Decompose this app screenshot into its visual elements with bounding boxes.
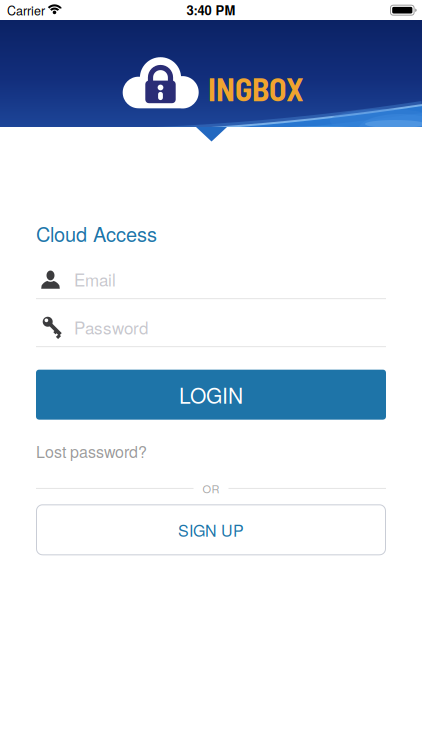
staticText: Password xyxy=(74,315,148,339)
button[interactable]: SIGN UP xyxy=(36,504,386,555)
button[interactable]: LOGIN xyxy=(36,370,386,420)
staticText: Lost password? xyxy=(36,440,147,462)
staticText: 3:40 PM xyxy=(186,1,235,19)
button[interactable]: Lost password? xyxy=(36,440,147,462)
button[interactable]: Email xyxy=(36,269,386,299)
staticText: OR xyxy=(202,481,219,496)
staticText: Carrier xyxy=(7,1,45,19)
staticText: LOGIN xyxy=(179,380,243,410)
staticText: Cloud Access xyxy=(36,219,157,248)
staticText: INGBOX xyxy=(208,69,304,108)
staticText: SIGN UP xyxy=(178,518,244,541)
staticText: Email xyxy=(74,267,116,291)
button[interactable]: Password xyxy=(36,317,386,347)
